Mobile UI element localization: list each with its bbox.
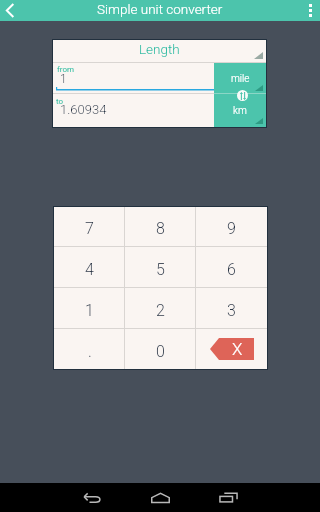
other: Backspace: [196, 329, 267, 369]
button[interactable]: .: [54, 329, 125, 369]
button[interactable]: km: [214, 94, 266, 127]
button[interactable]: Backspace: [196, 329, 267, 369]
button[interactable]: Length: [53, 40, 266, 62]
staticText: from: [57, 65, 74, 74]
staticText: km: [233, 105, 247, 117]
staticText: 3: [227, 301, 236, 320]
staticText: 5: [156, 260, 165, 279]
staticText: 1.60934: [60, 102, 107, 117]
button[interactable]: More options: [300, 0, 320, 21]
staticText: .: [88, 342, 92, 361]
staticText: 1: [60, 72, 67, 86]
button[interactable]: Recent apps: [194, 483, 262, 512]
staticText: to: [56, 97, 64, 106]
button[interactable]: 7: [54, 207, 125, 246]
button[interactable]: 5: [125, 247, 196, 287]
staticText: Length: [139, 41, 180, 57]
staticText: 1: [85, 301, 94, 320]
button[interactable]: 0: [125, 329, 196, 369]
button[interactable]: 4: [54, 247, 125, 287]
button[interactable]: 2: [125, 288, 196, 328]
button[interactable]: Back: [0, 0, 20, 21]
staticText: 2: [156, 301, 165, 320]
staticText: 0: [156, 342, 165, 361]
button[interactable]: mile: [214, 63, 266, 93]
staticText: 7: [85, 219, 94, 238]
button[interactable]: Back: [58, 483, 126, 512]
button[interactable]: to: [53, 94, 214, 127]
staticText: Simple unit converter: [97, 1, 223, 17]
button[interactable]: 3: [196, 288, 267, 328]
button[interactable]: 1: [54, 288, 125, 328]
button[interactable]: 9: [196, 207, 267, 246]
button[interactable]: 8: [125, 207, 196, 246]
staticText: 9: [227, 219, 236, 238]
staticText: mile: [231, 73, 250, 85]
button[interactable]: Home: [126, 483, 194, 512]
staticText: 4: [85, 260, 94, 279]
staticText: X: [232, 339, 243, 359]
staticText: 6: [227, 260, 236, 279]
button[interactable]: Swap units: [237, 90, 248, 101]
button[interactable]: 6: [196, 247, 267, 287]
button[interactable]: from: [53, 63, 214, 93]
staticText: 8: [156, 219, 165, 238]
